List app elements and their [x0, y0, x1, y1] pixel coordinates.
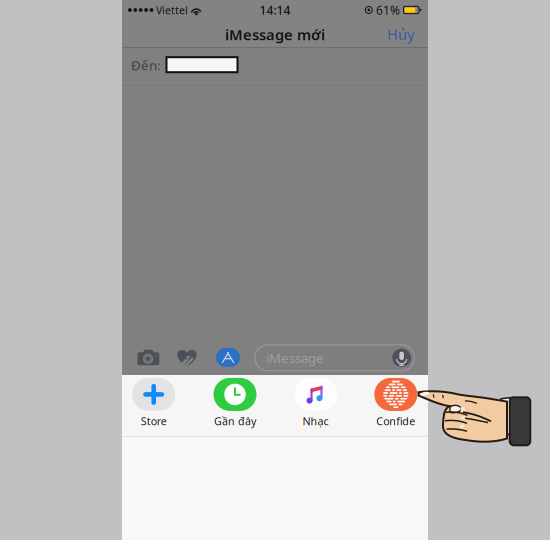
staticText: Gần đây: [214, 414, 256, 428]
staticText: iMessage mới: [225, 25, 325, 44]
button[interactable]: Store: [115, 375, 193, 430]
button[interactable]: Digital Touch: [172, 342, 202, 372]
button[interactable]: Gần đây: [196, 375, 274, 430]
button[interactable]: Hủy: [373, 19, 428, 49]
button[interactable]: iMessage: [255, 345, 414, 371]
staticText: Hủy: [387, 24, 414, 44]
staticText: iMessage: [266, 349, 324, 367]
staticText: Đến:: [131, 56, 161, 74]
button[interactable]: Nhạc: [277, 375, 355, 430]
staticText: Viettel: [156, 3, 188, 17]
button[interactable]: iMessage apps: [213, 342, 243, 372]
staticText: Confide: [376, 414, 415, 428]
button[interactable]: Camera: [133, 342, 163, 372]
staticText: Store: [141, 414, 167, 428]
staticText: Nhạc: [303, 414, 329, 428]
staticText: 61%: [376, 2, 400, 18]
staticText: 14:14: [259, 2, 290, 18]
button[interactable]: Confide: [357, 375, 435, 430]
